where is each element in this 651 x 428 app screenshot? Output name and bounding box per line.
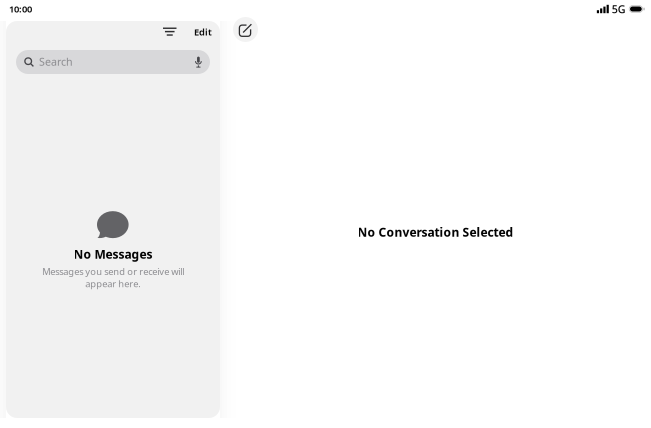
staticText: Edit xyxy=(194,26,212,38)
staticText: Messages you send or receive will appear… xyxy=(42,265,184,290)
button[interactable]: Filter conversations xyxy=(157,21,183,43)
staticText: 5G xyxy=(612,2,626,16)
button[interactable]: Search xyxy=(16,50,210,74)
staticText: Search xyxy=(39,54,73,69)
staticText: No Conversation Selected xyxy=(357,224,513,240)
staticText: No Messages xyxy=(73,246,152,262)
button[interactable]: Edit xyxy=(187,21,219,43)
button[interactable]: Compose new message xyxy=(233,17,258,42)
staticText: 10:00 xyxy=(9,3,32,15)
